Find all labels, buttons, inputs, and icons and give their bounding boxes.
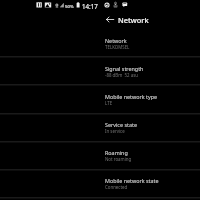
staticText: Roaming: [105, 149, 128, 156]
staticText: 50%: [65, 3, 74, 9]
staticText: Mobile network type: [105, 93, 158, 100]
staticText: Mobile network state: [105, 177, 159, 184]
button[interactable]: Mobile network type: [0, 85, 200, 113]
staticText: Service state: [105, 121, 137, 128]
button[interactable]: Back: [104, 14, 115, 25]
staticText: -88 dBm 52 asu: [105, 72, 138, 78]
staticText: Network: [105, 37, 127, 44]
button[interactable]: Network: [0, 29, 200, 57]
staticText: Connected: [105, 184, 128, 190]
staticText: TELKOMSEL: [105, 44, 130, 50]
staticText: Not roaming: [105, 156, 132, 162]
staticText: In service: [105, 128, 125, 134]
staticText: Network: [118, 15, 149, 25]
button[interactable]: Signal strength: [0, 57, 200, 85]
staticText: LTE: [105, 100, 113, 106]
staticText: Signal strength: [105, 65, 144, 72]
button[interactable]: Mobile network state: [0, 169, 200, 197]
staticText: 14:17: [82, 2, 98, 10]
button[interactable]: Service state: [0, 113, 200, 141]
button[interactable]: Roaming: [0, 141, 200, 169]
